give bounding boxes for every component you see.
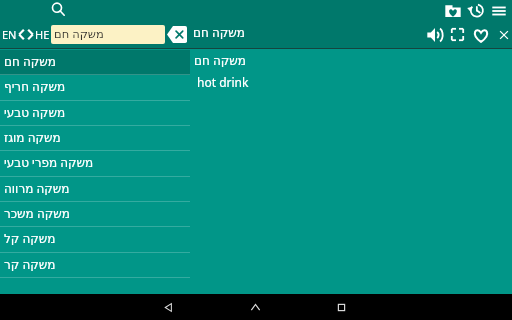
button[interactable]: משקה מפרי טבעי bbox=[0, 151, 190, 177]
staticText: EN bbox=[2, 27, 17, 42]
button[interactable]: משקה משכר bbox=[0, 202, 190, 227]
button[interactable]: Home bbox=[242, 294, 268, 320]
staticText: משקה חם bbox=[4, 53, 56, 69]
button[interactable]: משקה חם bbox=[0, 50, 190, 75]
staticText: משקה חם bbox=[54, 26, 165, 42]
staticText: משקה קר bbox=[4, 256, 56, 272]
staticText: משקה מפרי טבעי bbox=[4, 154, 94, 170]
button[interactable]: Favorites folder bbox=[441, 0, 464, 22]
button[interactable]: Back bbox=[155, 294, 181, 320]
button[interactable]: Clear bbox=[167, 25, 187, 44]
button[interactable]: Close bbox=[492, 23, 512, 46]
button[interactable]: EN bbox=[2, 27, 50, 42]
button[interactable]: Menu bbox=[487, 0, 510, 22]
staticText: משקה חם bbox=[194, 52, 246, 68]
staticText: משקה טבעי bbox=[4, 104, 66, 120]
button[interactable]: History bbox=[464, 0, 487, 22]
staticText: משקה חם bbox=[193, 24, 245, 40]
staticText: משקה משכר bbox=[4, 205, 70, 221]
button[interactable]: משקה קל bbox=[0, 227, 190, 253]
staticText: משקה קל bbox=[4, 230, 56, 246]
staticText: hot drink bbox=[197, 74, 249, 90]
staticText: משקה מרווה bbox=[4, 180, 70, 196]
button[interactable]: משקה מרווה bbox=[0, 177, 190, 202]
button[interactable]: Speak bbox=[423, 23, 446, 46]
button[interactable]: משקה חם bbox=[51, 25, 165, 44]
button[interactable]: Recents bbox=[328, 294, 354, 320]
staticText: HE bbox=[35, 27, 50, 42]
button[interactable]: משקה טבעי bbox=[0, 101, 190, 126]
button[interactable]: משקה קר bbox=[0, 253, 190, 278]
button[interactable]: Favorite bbox=[469, 23, 492, 46]
button[interactable]: Search bbox=[51, 2, 66, 17]
button[interactable]: משקה חריף bbox=[0, 75, 190, 101]
button[interactable]: Fullscreen bbox=[446, 23, 469, 46]
staticText: משקה מוגז bbox=[4, 129, 61, 145]
staticText: משקה חריף bbox=[4, 78, 66, 94]
button[interactable]: משקה מוגז bbox=[0, 126, 190, 151]
